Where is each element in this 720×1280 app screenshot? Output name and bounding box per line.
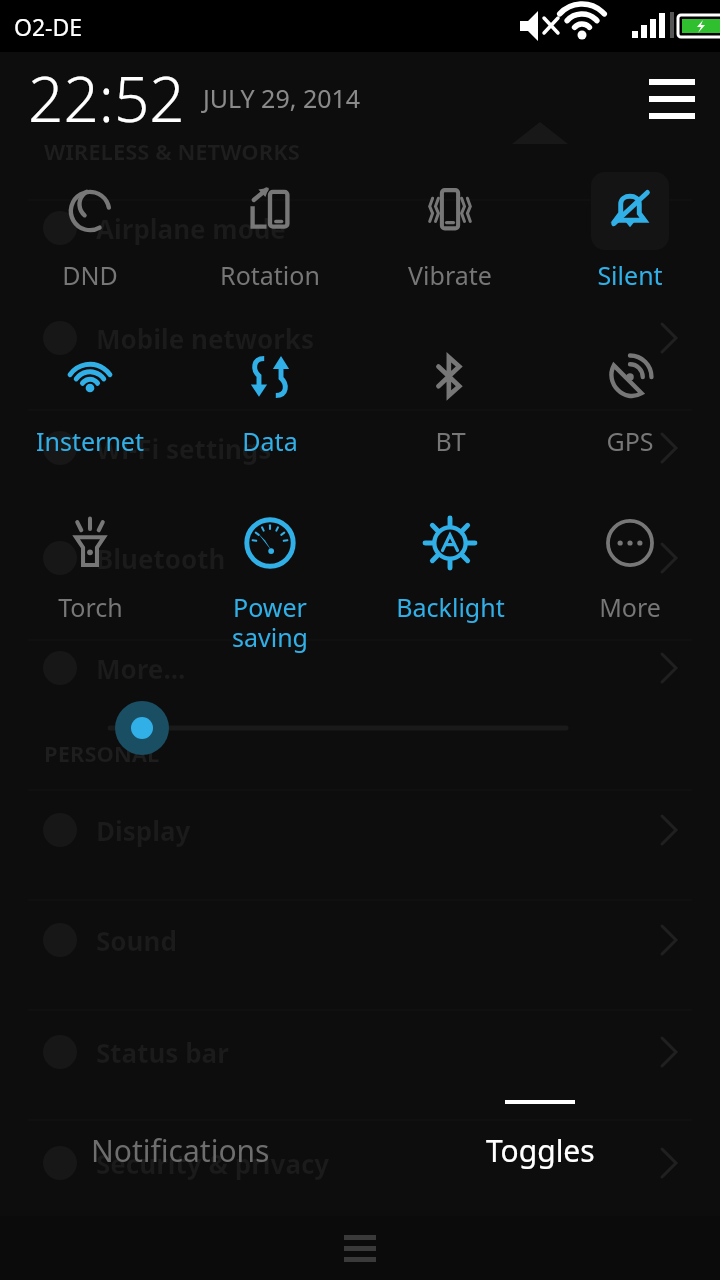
- staticText: DND: [62, 258, 118, 292]
- staticText: Mobile networks: [96, 321, 315, 356]
- button[interactable]: BT: [360, 330, 540, 462]
- staticText: JULY 29, 2014: [203, 81, 361, 115]
- staticText: Torch: [58, 590, 123, 624]
- staticText: Vibrate: [408, 258, 492, 292]
- button[interactable]: Insternet: [0, 330, 180, 462]
- button[interactable]: Backlight: [360, 496, 540, 628]
- staticText: Status bar: [96, 1035, 229, 1070]
- button[interactable]: More: [540, 496, 720, 628]
- button[interactable]: Vibrate: [360, 164, 540, 296]
- staticText: Rotation: [220, 258, 320, 292]
- staticText: Data: [242, 424, 298, 458]
- button[interactable]: Power saving: [180, 496, 360, 658]
- button[interactable]: Data: [180, 330, 360, 462]
- staticText: Insternet: [36, 424, 144, 458]
- button[interactable]: GPS: [540, 330, 720, 462]
- staticText: Display: [96, 813, 191, 848]
- staticText: O2-DE: [14, 11, 83, 42]
- staticText: Backlight: [396, 590, 505, 624]
- button[interactable]: Menu: [640, 66, 704, 130]
- button[interactable]: Torch: [0, 496, 180, 628]
- staticText: Airplane mode: [96, 211, 286, 246]
- button[interactable]: Silent: [540, 164, 720, 296]
- staticText: PERSONAL: [44, 738, 160, 768]
- button[interactable]: Rotation: [180, 164, 360, 296]
- staticText: Power saving: [232, 590, 308, 654]
- button[interactable]: Menu: [325, 1216, 395, 1280]
- button[interactable]: Brightness: [0, 698, 720, 758]
- button[interactable]: Toggles: [360, 1084, 720, 1216]
- staticText: WIRELESS & NETWORKS: [44, 136, 300, 166]
- button[interactable]: DND: [0, 164, 180, 296]
- staticText: Sound: [96, 923, 177, 958]
- staticText: Toggles: [486, 1130, 595, 1171]
- staticText: More...: [96, 651, 186, 686]
- staticText: BT: [435, 424, 466, 458]
- staticText: Wi-Fi settings: [96, 431, 272, 466]
- staticText: Bluetooth: [96, 541, 226, 576]
- staticText: 22:52: [28, 56, 185, 140]
- staticText: GPS: [606, 424, 654, 458]
- staticText: Silent: [597, 258, 663, 292]
- staticText: Notifications: [91, 1130, 270, 1171]
- button[interactable]: Notifications: [0, 1084, 360, 1216]
- staticText: Security & privacy: [96, 1146, 330, 1181]
- staticText: More: [599, 590, 661, 624]
